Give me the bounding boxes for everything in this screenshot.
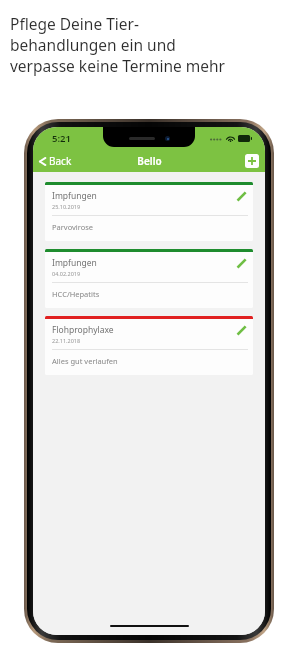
staticText: 22.11.2018	[52, 337, 81, 344]
button[interactable]: Edit	[234, 324, 248, 337]
button[interactable]: Impfungen	[45, 249, 253, 308]
staticText: behandlungen ein und	[10, 34, 176, 55]
staticText: HCC/Hepatits	[52, 289, 100, 299]
staticText: Alles gut verlaufen	[52, 356, 118, 366]
button[interactable]: Flohprophylaxe	[45, 316, 253, 375]
staticText: Parvovirose	[52, 222, 94, 232]
staticText: verpasse keine Termine mehr	[10, 55, 225, 76]
button[interactable]: Back	[33, 151, 80, 171]
staticText: 04.02.2019	[52, 270, 81, 277]
staticText: Impfungen	[52, 190, 97, 202]
button[interactable]: Add treatment	[245, 154, 259, 168]
staticText: Back	[49, 154, 72, 168]
staticText: Flohprophylaxe	[52, 324, 114, 336]
staticText: 5:21	[52, 132, 71, 145]
button[interactable]: Edit	[234, 257, 248, 270]
staticText: 25.10.2019	[52, 203, 81, 210]
button[interactable]: Impfungen	[45, 182, 253, 241]
staticText: Impfungen	[52, 257, 97, 269]
button[interactable]: Edit	[234, 190, 248, 203]
staticText: Bello	[137, 154, 162, 168]
staticText: Pflege Deine Tier-	[10, 13, 139, 34]
